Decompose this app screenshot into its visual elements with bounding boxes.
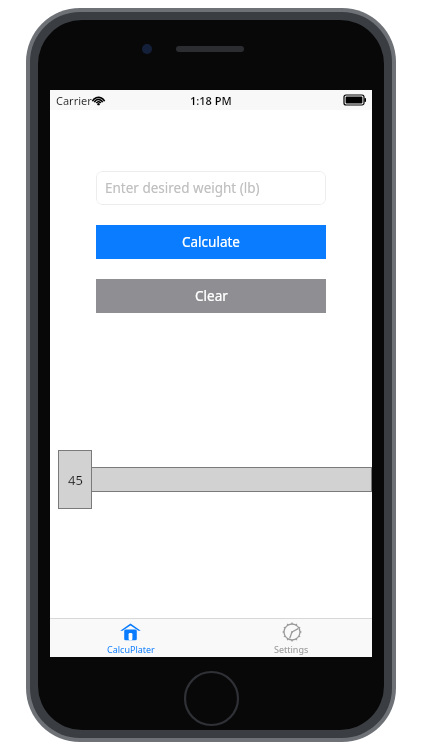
button[interactable]: Enter desired weight (lb)	[96, 171, 326, 205]
button[interactable]: CalcuPlater	[50, 621, 211, 655]
staticText: CalcuPlater	[107, 643, 155, 655]
staticText: Clear	[195, 287, 228, 305]
button[interactable]: Clear	[96, 279, 326, 313]
staticText: Carrier	[56, 93, 92, 108]
staticText: Settings	[274, 643, 309, 655]
staticText: Enter desired weight (lb)	[105, 179, 260, 197]
button[interactable]: Calculate	[96, 225, 326, 259]
button[interactable]: Settings	[211, 622, 372, 655]
staticText: 1:18 PM	[190, 93, 232, 108]
staticText: Calculate	[182, 233, 240, 251]
staticText: 45	[68, 471, 83, 489]
